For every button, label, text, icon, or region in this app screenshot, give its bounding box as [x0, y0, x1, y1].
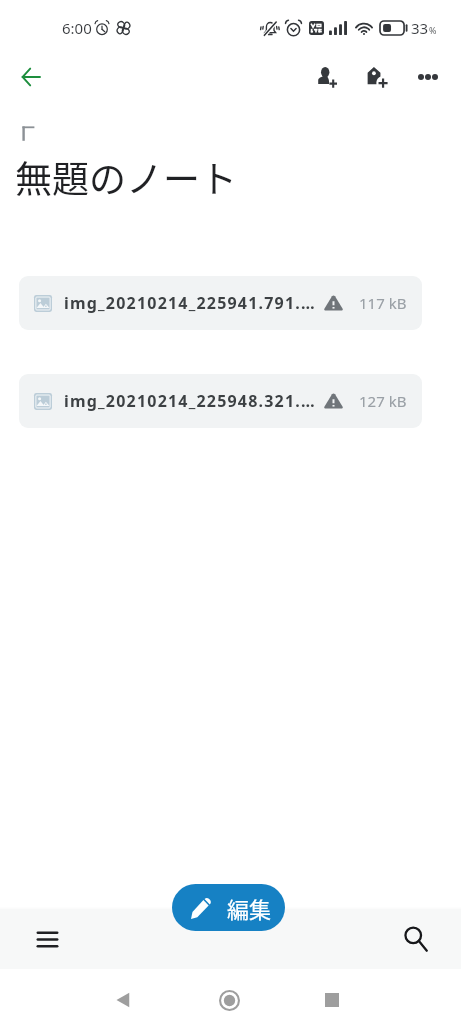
staticText: 編集: [227, 892, 272, 924]
button[interactable]: Menu: [26, 918, 68, 960]
staticText: 6:00: [62, 18, 92, 38]
staticText: 無題のノート: [15, 150, 237, 204]
staticText: %: [429, 24, 437, 36]
button[interactable]: Recents: [312, 980, 352, 1020]
button[interactable]: Back: [9, 55, 53, 99]
button[interactable]: Back: [102, 980, 142, 1020]
button[interactable]: More options: [406, 55, 450, 99]
staticText: 117 kB: [359, 293, 407, 313]
button[interactable]: img_20210214_225948.321....: [19, 374, 422, 428]
button[interactable]: img_20210214_225941.791....: [19, 276, 422, 330]
button[interactable]: Add label: [355, 55, 399, 99]
button[interactable]: Home: [209, 980, 249, 1020]
button[interactable]: Add person: [305, 55, 349, 99]
staticText: img_20210214_225948.321....: [64, 390, 318, 412]
staticText: 33: [411, 18, 429, 38]
staticText: 127 kB: [359, 391, 407, 411]
button[interactable]: Search: [394, 917, 438, 961]
button[interactable]: 編集: [172, 884, 285, 931]
staticText: img_20210214_225941.791....: [64, 292, 318, 314]
